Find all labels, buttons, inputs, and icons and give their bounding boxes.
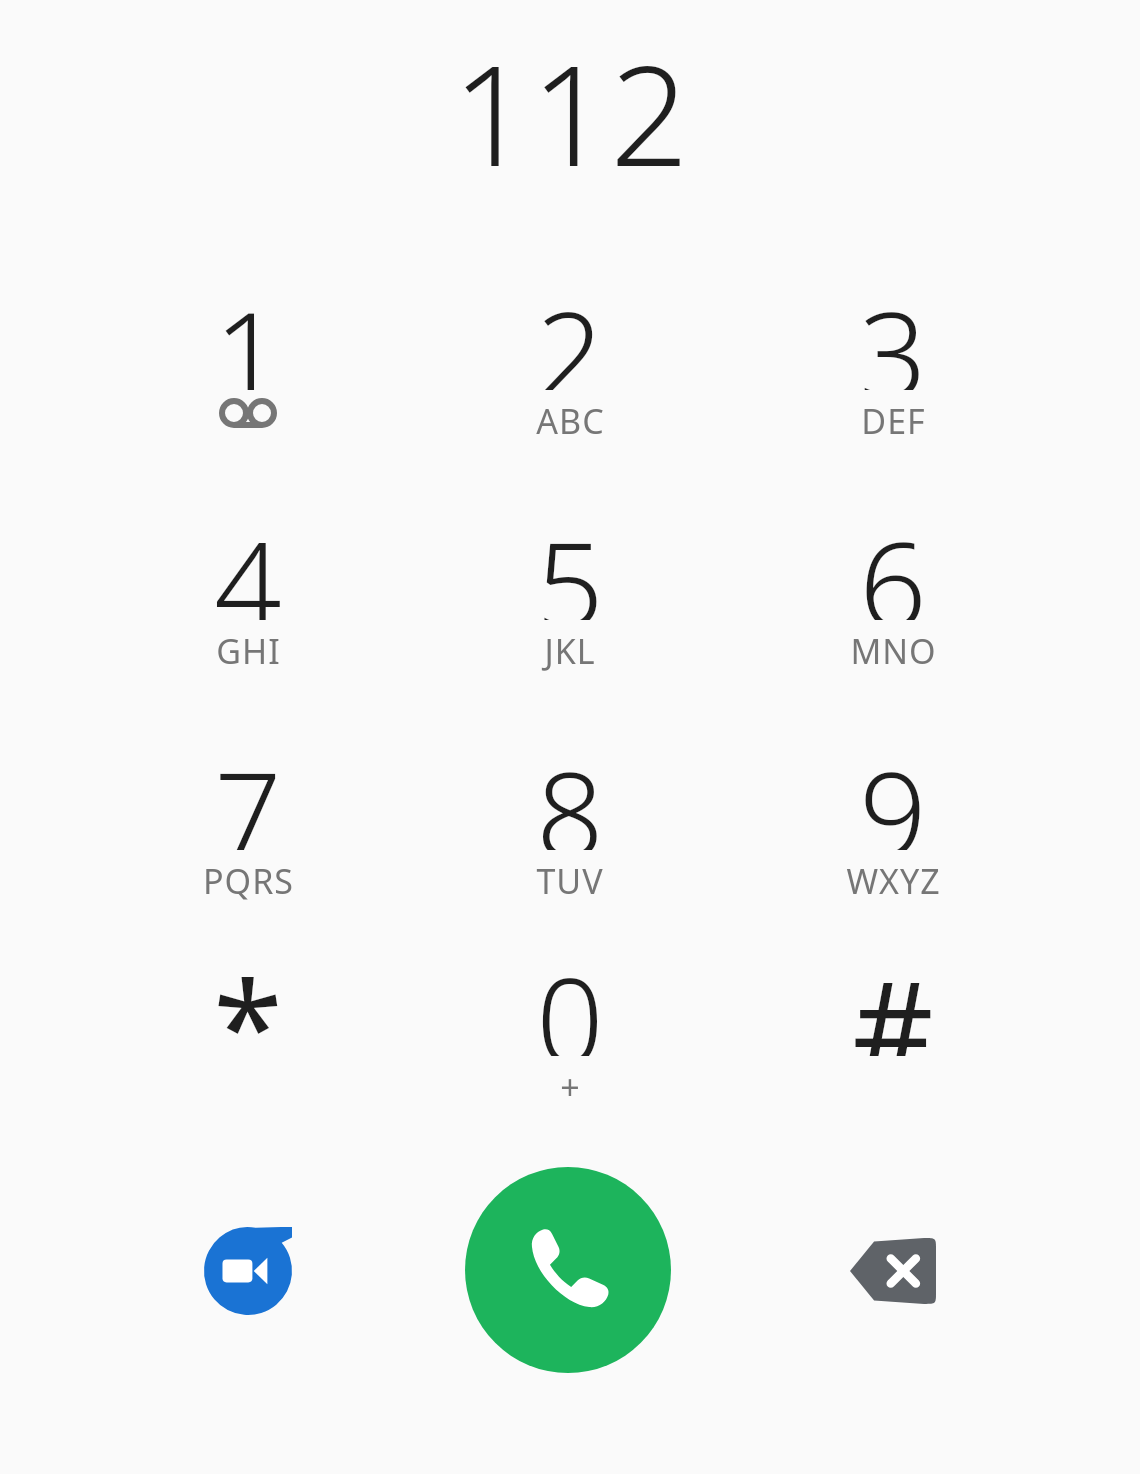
staticText: *: [213, 938, 283, 1056]
staticText: JKL: [544, 628, 596, 674]
staticText: 5: [536, 502, 604, 620]
button[interactable]: 7: [128, 732, 368, 932]
button[interactable]: Backspace: [828, 1206, 958, 1336]
button[interactable]: 8: [450, 732, 690, 932]
button[interactable]: 4: [128, 502, 368, 702]
staticText: WXYZ: [846, 858, 941, 904]
staticText: 7: [214, 732, 282, 850]
staticText: 0: [536, 938, 604, 1056]
button[interactable]: 2: [450, 272, 690, 472]
button[interactable]: Call: [465, 1167, 671, 1373]
staticText: 2: [536, 272, 604, 390]
staticText: 8: [536, 732, 604, 850]
button[interactable]: 9: [773, 732, 1013, 932]
staticText: DEF: [861, 398, 926, 444]
button[interactable]: 5: [450, 502, 690, 702]
button[interactable]: 112: [0, 18, 1140, 168]
button[interactable]: #: [773, 938, 1013, 1138]
button[interactable]: 1: [128, 272, 368, 472]
button[interactable]: 6: [773, 502, 1013, 702]
staticText: ABC: [536, 398, 605, 444]
staticText: MNO: [850, 628, 937, 674]
staticText: 112: [452, 18, 689, 168]
button[interactable]: 0: [450, 938, 690, 1138]
staticText: TUV: [536, 858, 604, 904]
staticText: 4: [214, 502, 282, 620]
button[interactable]: 3: [773, 272, 1013, 472]
button[interactable]: *: [128, 938, 368, 1138]
staticText: +: [560, 1064, 581, 1110]
staticText: PQRS: [203, 858, 294, 904]
staticText: 9: [859, 732, 927, 850]
staticText: GHI: [216, 628, 281, 674]
staticText: 3: [859, 272, 927, 390]
staticText: 1: [214, 272, 282, 390]
button[interactable]: Video call with Duo: [183, 1206, 313, 1336]
staticText: #: [852, 938, 934, 1056]
staticText: 6: [859, 502, 927, 620]
